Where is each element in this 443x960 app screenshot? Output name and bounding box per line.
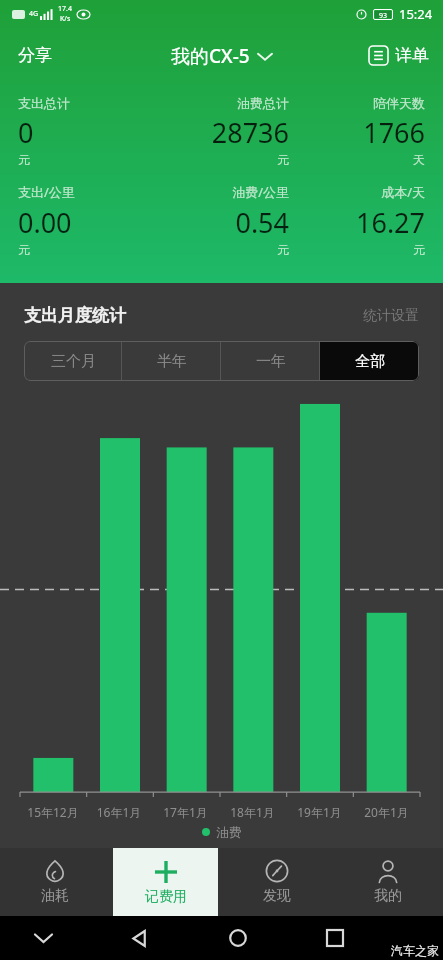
button[interactable]: 半年 xyxy=(122,341,221,381)
staticText: 16年1月 xyxy=(86,804,152,820)
staticText: 半年 xyxy=(157,352,187,371)
staticText: 陪伴天数 xyxy=(289,95,425,111)
staticText: 详单 xyxy=(395,45,429,66)
button[interactable]: Back xyxy=(123,921,157,955)
button[interactable]: Home xyxy=(221,921,255,955)
button[interactable]: 三个月 xyxy=(24,341,122,381)
staticText: 支出月度统计 xyxy=(24,305,126,326)
staticText: K/s xyxy=(60,14,71,24)
staticText: 分享 xyxy=(18,45,52,66)
staticText: 元 xyxy=(18,242,153,257)
staticText: 一年 xyxy=(256,352,286,371)
staticText: 0 xyxy=(18,114,153,151)
staticText: 28736 xyxy=(153,114,289,151)
staticText: 0.00 xyxy=(18,204,153,241)
button[interactable]: 记费用 xyxy=(113,848,218,916)
button[interactable]: Hide keyboard xyxy=(26,921,60,955)
staticText: 油耗 xyxy=(41,887,69,905)
button[interactable]: 分享 xyxy=(0,35,70,76)
staticText: 全部 xyxy=(355,352,385,371)
button[interactable]: 我的 xyxy=(332,848,443,916)
staticText: 支出/公里 xyxy=(18,183,153,201)
staticText: 汽车之家 xyxy=(391,943,439,958)
button[interactable]: 统计设置 xyxy=(363,307,419,325)
staticText: 油费总计 xyxy=(153,95,289,111)
staticText: 15年12月 xyxy=(20,804,86,820)
staticText: 统计设置 xyxy=(363,307,419,325)
button[interactable]: 油耗 xyxy=(0,848,110,916)
staticText: 我的CX-5 xyxy=(171,43,250,69)
button[interactable]: 全部 xyxy=(320,341,419,381)
staticText: 元 xyxy=(153,152,289,167)
staticText: 18年1月 xyxy=(219,804,286,820)
staticText: 20年1月 xyxy=(353,804,420,820)
staticText: 成本/天 xyxy=(289,183,425,201)
staticText: 天 xyxy=(289,152,425,167)
staticText: 三个月 xyxy=(51,352,96,371)
button[interactable]: Recents xyxy=(318,921,352,955)
button[interactable]: 我的CX-5 xyxy=(161,35,282,77)
staticText: 油费/公里 xyxy=(153,183,289,201)
staticText: 93 xyxy=(375,11,391,18)
staticText: 我的 xyxy=(374,887,402,905)
staticText: 元 xyxy=(289,242,425,257)
staticText: 16.27 xyxy=(289,204,425,241)
staticText: 0.54 xyxy=(153,204,289,241)
button[interactable]: 详单 xyxy=(355,37,443,74)
button[interactable]: 发现 xyxy=(221,848,332,916)
staticText: 支出总计 xyxy=(18,95,153,111)
staticText: 17.4 xyxy=(58,4,72,14)
staticText: 元 xyxy=(18,152,153,167)
staticText: 15:24 xyxy=(399,5,433,23)
staticText: 17年1月 xyxy=(152,804,219,820)
staticText: 发现 xyxy=(263,887,291,905)
staticText: 1766 xyxy=(289,114,425,151)
staticText: 记费用 xyxy=(145,888,187,906)
button[interactable]: 一年 xyxy=(221,341,320,381)
staticText: 19年1月 xyxy=(286,804,353,820)
staticText: 元 xyxy=(153,242,289,257)
staticText: 4G xyxy=(29,9,39,19)
staticText: 油费 xyxy=(216,824,242,840)
